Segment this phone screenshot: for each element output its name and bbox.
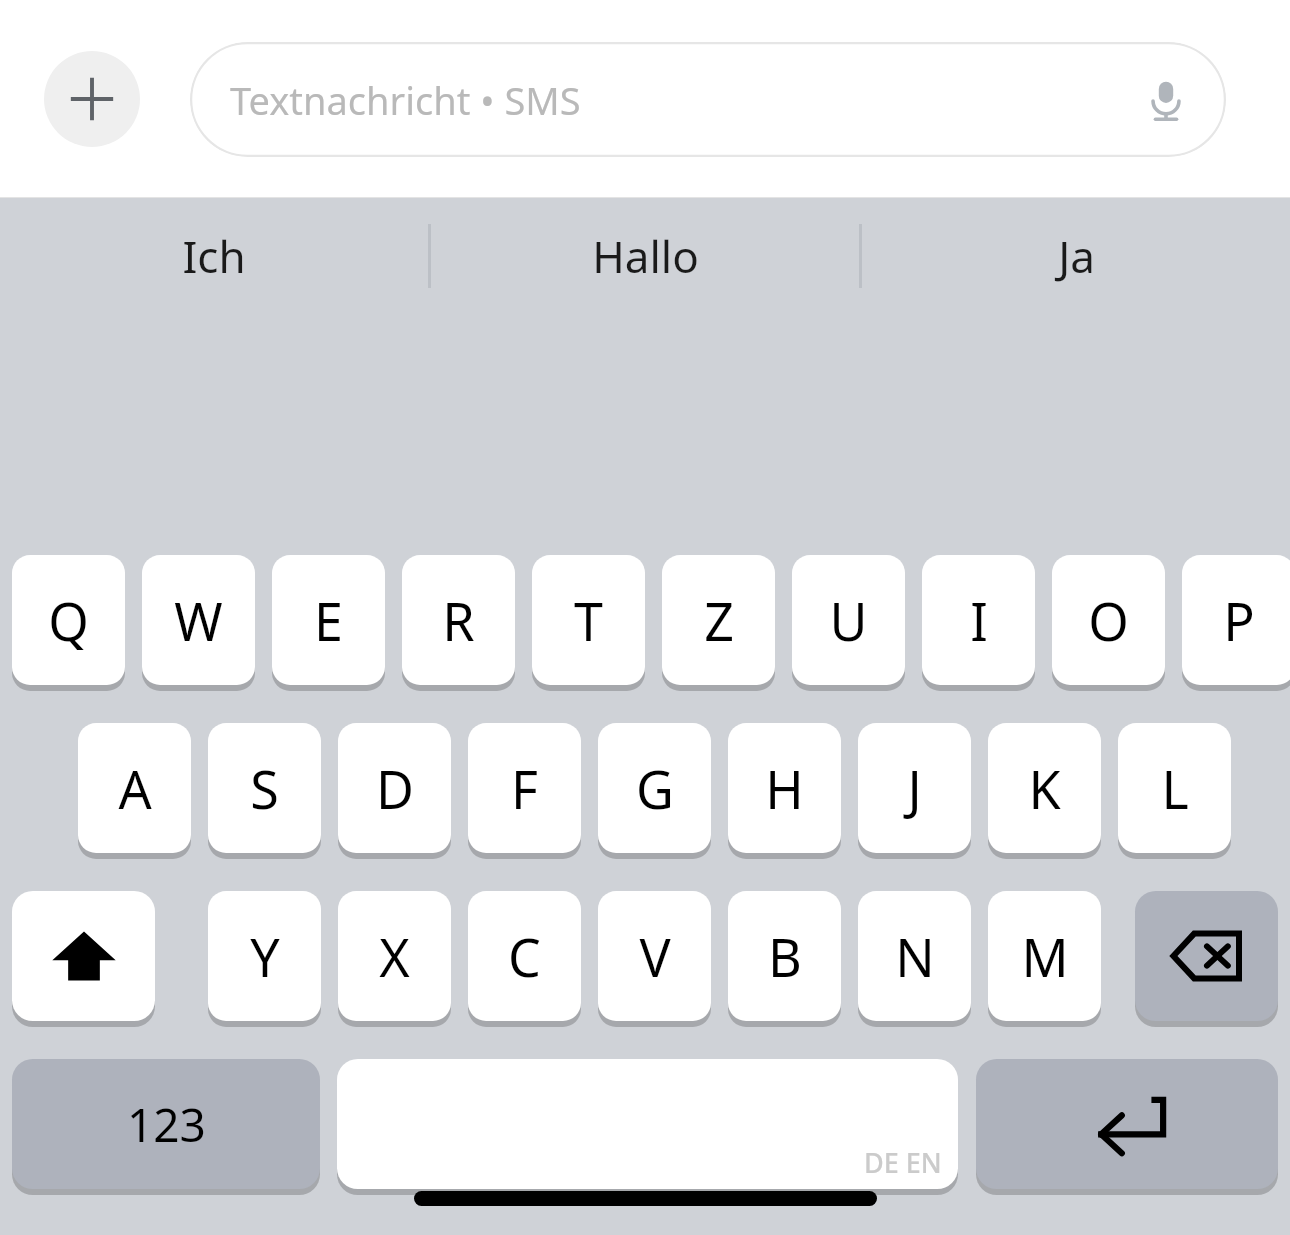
- button[interactable]: F: [468, 723, 581, 853]
- staticText: I: [970, 585, 988, 656]
- button[interactable]: Q: [12, 555, 125, 685]
- staticText: Z: [704, 585, 734, 656]
- staticText: Y: [250, 921, 280, 992]
- button[interactable]: M: [988, 891, 1101, 1021]
- staticText: F: [511, 753, 538, 824]
- staticText: V: [639, 921, 671, 992]
- button[interactable]: W: [142, 555, 255, 685]
- staticText: Q: [48, 585, 89, 656]
- staticText: B: [768, 921, 802, 992]
- button[interactable]: D: [338, 723, 451, 853]
- button[interactable]: U: [792, 555, 905, 685]
- button[interactable]: Ja: [862, 198, 1290, 313]
- button[interactable]: Ich: [0, 198, 428, 313]
- staticText: U: [829, 585, 868, 656]
- button[interactable]: J: [858, 723, 971, 853]
- button[interactable]: V: [598, 891, 711, 1021]
- button[interactable]: B: [728, 891, 841, 1021]
- staticText: A: [118, 753, 152, 824]
- button[interactable]: O: [1052, 555, 1165, 685]
- button[interactable]: X: [338, 891, 451, 1021]
- button[interactable]: Hallo: [431, 198, 859, 313]
- staticText: R: [442, 585, 475, 656]
- button[interactable]: C: [468, 891, 581, 1021]
- button[interactable]: E: [272, 555, 385, 685]
- staticText: Ich: [182, 226, 246, 286]
- staticText: K: [1028, 753, 1061, 824]
- staticText: L: [1161, 753, 1189, 824]
- button[interactable]: Textnachricht • SMS: [190, 42, 1226, 157]
- staticText: J: [907, 753, 922, 824]
- staticText: C: [508, 921, 541, 992]
- button[interactable]: Enter: [976, 1059, 1278, 1189]
- button[interactable]: Space: [337, 1059, 958, 1189]
- button[interactable]: 123: [12, 1059, 320, 1189]
- button[interactable]: T: [532, 555, 645, 685]
- button[interactable]: Shift: [12, 891, 155, 1021]
- staticText: S: [250, 753, 279, 824]
- staticText: P: [1223, 585, 1255, 656]
- button[interactable]: P: [1182, 555, 1290, 685]
- staticText: W: [174, 585, 223, 656]
- button[interactable]: L: [1118, 723, 1231, 853]
- staticText: O: [1088, 585, 1129, 656]
- staticText: M: [1021, 921, 1069, 992]
- staticText: X: [379, 921, 410, 992]
- staticText: DE EN: [864, 1144, 942, 1181]
- staticText: D: [376, 753, 414, 824]
- button[interactable]: S: [208, 723, 321, 853]
- button[interactable]: Y: [208, 891, 321, 1021]
- button[interactable]: A: [78, 723, 191, 853]
- button[interactable]: I: [922, 555, 1035, 685]
- button[interactable]: H: [728, 723, 841, 853]
- button[interactable]: Voice input: [1130, 64, 1202, 136]
- staticText: 123: [127, 1093, 206, 1156]
- staticText: Textnachricht • SMS: [230, 74, 581, 126]
- staticText: G: [636, 753, 674, 824]
- button[interactable]: R: [402, 555, 515, 685]
- staticText: Ja: [1058, 226, 1095, 286]
- button[interactable]: K: [988, 723, 1101, 853]
- staticText: E: [314, 585, 343, 656]
- staticText: N: [895, 921, 935, 992]
- button[interactable]: Backspace: [1135, 891, 1278, 1021]
- button[interactable]: N: [858, 891, 971, 1021]
- button[interactable]: G: [598, 723, 711, 853]
- button[interactable]: Add attachment: [44, 51, 140, 147]
- staticText: Hallo: [592, 226, 699, 286]
- staticText: T: [574, 585, 603, 656]
- staticText: H: [765, 753, 804, 824]
- button[interactable]: Z: [662, 555, 775, 685]
